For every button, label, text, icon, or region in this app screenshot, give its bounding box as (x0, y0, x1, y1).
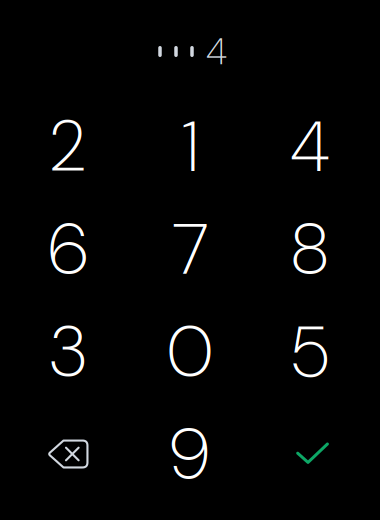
button[interactable]: 8 (247, 198, 373, 300)
staticText: 6 (48, 203, 88, 295)
staticText: 0 (167, 305, 213, 397)
button[interactable]: 4 (247, 95, 373, 198)
staticText: 5 (291, 305, 328, 397)
button[interactable]: 7 (127, 198, 253, 300)
staticText: 9 (170, 408, 210, 500)
staticText: 1 (182, 100, 197, 192)
button[interactable]: 9 (127, 403, 253, 505)
button[interactable]: Confirm passcode (247, 403, 373, 505)
staticText: 3 (49, 305, 87, 397)
button[interactable]: 0 (127, 300, 253, 403)
staticText: 8 (291, 203, 329, 295)
staticText: 2 (50, 100, 85, 192)
button[interactable]: 3 (5, 300, 131, 403)
staticText: 4 (206, 27, 227, 76)
button[interactable]: 2 (5, 95, 131, 198)
button[interactable]: 6 (5, 198, 131, 300)
staticText: 7 (172, 203, 208, 295)
button[interactable]: 5 (247, 300, 373, 403)
button[interactable]: 1 (127, 95, 253, 198)
staticText: 4 (290, 100, 330, 192)
button[interactable]: Delete (5, 403, 131, 505)
